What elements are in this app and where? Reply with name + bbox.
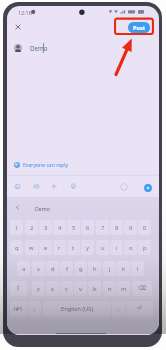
staticText: i <box>116 244 118 252</box>
button[interactable]: h <box>88 261 101 276</box>
button[interactable]: m <box>117 281 130 296</box>
staticText: a <box>22 265 26 273</box>
staticText: 12:16 <box>18 9 32 16</box>
staticText: q <box>15 244 19 252</box>
button[interactable]: 2 <box>25 220 38 235</box>
staticText: n <box>108 285 112 293</box>
button[interactable]: 1 <box>10 220 23 235</box>
staticText: 2 <box>30 224 34 232</box>
button[interactable]: Add poll <box>51 183 58 190</box>
staticText: t <box>72 244 75 252</box>
button[interactable]: t <box>67 240 80 255</box>
button[interactable]: l <box>131 261 144 276</box>
button[interactable]: ⇧ <box>10 281 27 296</box>
button[interactable]: a <box>17 261 30 276</box>
button[interactable]: q <box>10 240 23 255</box>
button[interactable]: 6 <box>81 220 94 235</box>
staticText: Post <box>133 24 146 32</box>
button[interactable]: u <box>96 240 109 255</box>
button[interactable]: Close <box>12 21 24 33</box>
button[interactable]: p <box>138 240 151 255</box>
staticText: v <box>79 285 82 293</box>
staticText: s <box>37 265 40 273</box>
button[interactable]: g <box>74 261 87 276</box>
staticText: . <box>118 305 120 313</box>
staticText: 6 <box>86 224 90 232</box>
staticText: j <box>109 265 111 273</box>
button[interactable]: x <box>46 281 59 296</box>
staticText: , <box>34 305 36 313</box>
button[interactable]: ⏎ <box>126 301 153 316</box>
button[interactable]: 0 <box>138 220 151 235</box>
staticText: Demo <box>30 44 48 52</box>
button[interactable]: 7 <box>96 220 109 235</box>
staticText: Demo <box>35 205 51 212</box>
staticText: b <box>93 285 97 293</box>
staticText: o <box>129 244 133 252</box>
button[interactable]: ⌫ <box>132 281 152 296</box>
button[interactable]: c <box>60 281 73 296</box>
button[interactable]: 8 <box>110 220 123 235</box>
staticText: m <box>121 285 127 293</box>
button[interactable]: s <box>32 261 45 276</box>
button[interactable]: n <box>103 281 116 296</box>
staticText: ⌫ <box>138 285 147 292</box>
staticText: w <box>29 244 34 252</box>
button[interactable]: !#1 <box>10 301 27 316</box>
button[interactable]: Add another post <box>142 182 154 194</box>
staticText: d <box>51 265 55 273</box>
staticText: ⇧ <box>16 285 21 292</box>
button[interactable]: k <box>117 261 130 276</box>
staticText: l <box>137 265 139 273</box>
button[interactable]: o <box>124 240 137 255</box>
button[interactable]: Add GIF <box>33 183 40 190</box>
staticText: e <box>44 244 48 252</box>
staticText: ⏎ <box>137 305 142 312</box>
staticText: u <box>101 244 105 252</box>
button[interactable]: Everyone can reply <box>12 159 76 171</box>
button[interactable]: y <box>81 240 94 255</box>
button[interactable]: . <box>112 301 125 316</box>
staticText: x <box>51 285 55 293</box>
button[interactable]: English (US) <box>43 301 111 316</box>
staticText: 5 <box>72 224 76 232</box>
button[interactable]: 4 <box>53 220 66 235</box>
button[interactable]: f <box>60 261 73 276</box>
button[interactable]: 5 <box>67 220 80 235</box>
staticText: z <box>37 285 40 293</box>
button[interactable]: i <box>110 240 123 255</box>
staticText: 0 <box>143 224 147 232</box>
button[interactable]: Post <box>128 22 150 33</box>
staticText: Everyone can reply <box>23 162 69 169</box>
staticText: k <box>122 265 126 273</box>
button[interactable]: z <box>32 281 45 296</box>
staticText: !#1 <box>14 305 23 313</box>
staticText: f <box>66 265 68 273</box>
button[interactable]: Add photos <box>14 183 21 190</box>
button[interactable]: Character count <box>118 181 130 193</box>
staticText: 8 <box>115 224 119 232</box>
staticText: 7 <box>101 224 105 232</box>
staticText: h <box>93 265 97 273</box>
staticText: 9 <box>129 224 133 232</box>
button[interactable]: e <box>39 240 52 255</box>
button[interactable]: r <box>53 240 66 255</box>
staticText: 3 <box>44 224 48 232</box>
button[interactable]: b <box>88 281 101 296</box>
button[interactable]: v <box>74 281 87 296</box>
staticText: p <box>143 244 147 252</box>
staticText: r <box>58 244 61 252</box>
button[interactable]: Previous suggestion <box>13 203 22 212</box>
staticText: 4 <box>58 224 62 232</box>
staticText: 1 <box>15 224 19 232</box>
staticText: English (US) <box>61 305 94 313</box>
button[interactable]: d <box>46 261 59 276</box>
button[interactable]: , <box>28 301 41 316</box>
button[interactable]: 3 <box>39 220 52 235</box>
button[interactable]: Add location <box>70 183 77 190</box>
staticText: c <box>65 285 68 293</box>
button[interactable]: 9 <box>124 220 137 235</box>
button[interactable]: j <box>103 261 116 276</box>
staticText: y <box>86 244 89 252</box>
button[interactable]: w <box>25 240 38 255</box>
